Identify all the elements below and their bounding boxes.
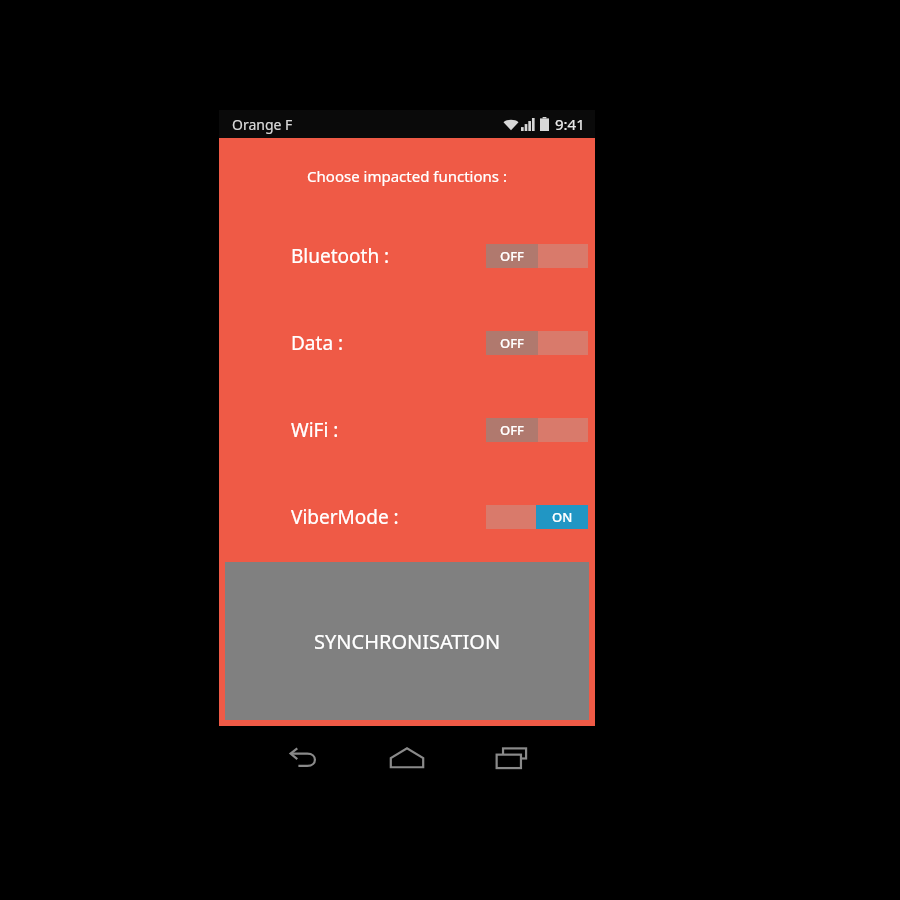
button[interactable]: Home — [379, 730, 435, 785]
button[interactable]: SYNCHRONISATION — [225, 562, 589, 720]
staticText: 9:41 — [555, 114, 585, 134]
staticText: Bluetooth : — [291, 243, 390, 269]
staticText: OFF — [500, 334, 524, 352]
staticText: WiFi : — [291, 417, 339, 443]
button[interactable]: ON — [486, 505, 588, 529]
staticText: Orange F — [232, 115, 293, 134]
button[interactable]: Back — [276, 730, 332, 785]
button[interactable]: OFF — [486, 331, 588, 355]
staticText: Choose impacted functions : — [219, 166, 595, 186]
button[interactable]: Recent apps — [484, 730, 540, 785]
button[interactable]: OFF — [486, 244, 588, 268]
staticText: ViberMode : — [291, 504, 399, 530]
staticText: OFF — [500, 247, 524, 265]
staticText: Data : — [291, 330, 344, 356]
staticText: OFF — [500, 421, 524, 439]
staticText: ON — [552, 508, 573, 526]
staticText: SYNCHRONISATION — [314, 628, 501, 655]
button[interactable]: OFF — [486, 418, 588, 442]
